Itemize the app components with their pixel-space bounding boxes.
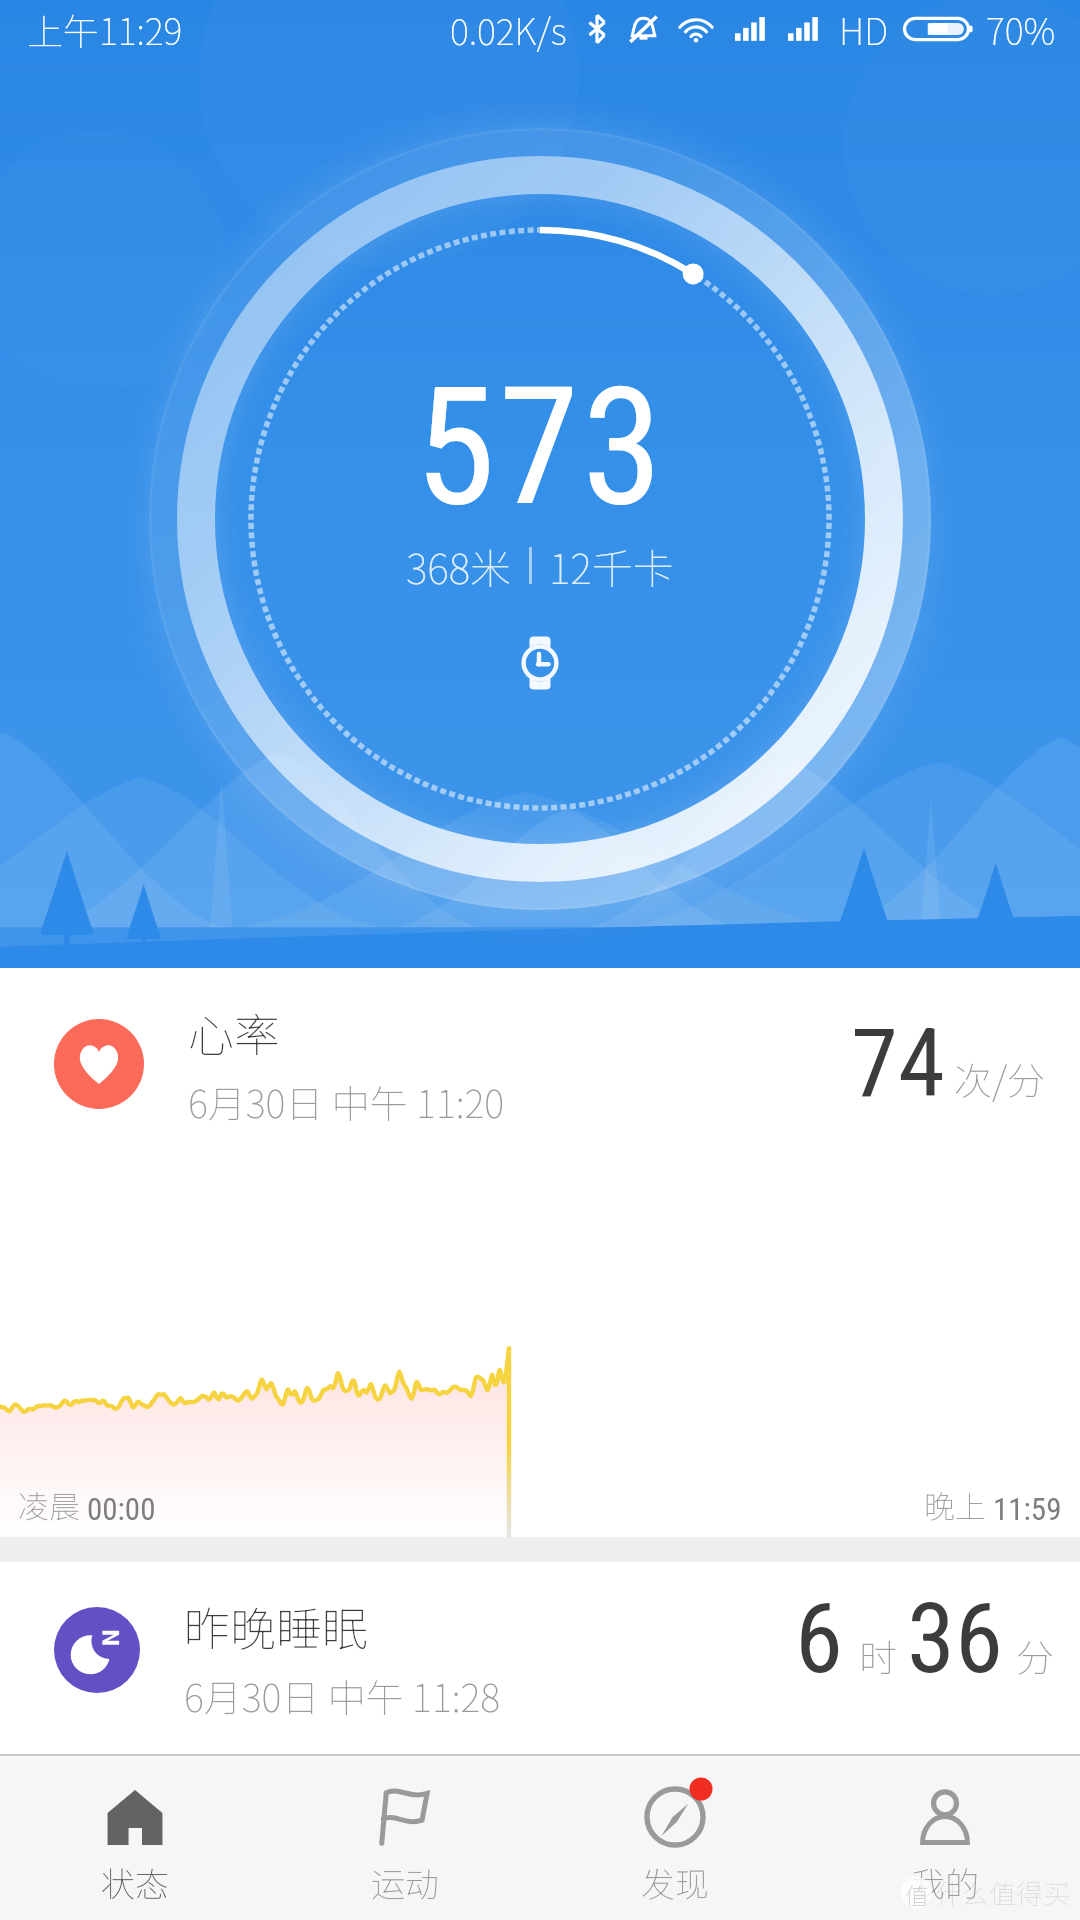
staticText: 运动 [371,1858,439,1907]
staticText: 时 [859,1628,898,1683]
staticText: 12千卡 [549,536,674,595]
staticText: 70% [986,3,1056,55]
button[interactable]: 发现 [540,1756,810,1920]
staticText: 6月30日 中午 11:20 [188,1074,505,1129]
staticText: 昨晚睡眠 [184,1593,368,1660]
button[interactable]: 状态 [0,1756,270,1920]
staticText: 36 [907,1582,1003,1696]
staticText: 次/分 [954,1051,1046,1106]
staticText: 11:59 [993,1491,1062,1527]
staticText: HD [839,3,888,55]
staticText: 6月30日 中午 11:28 [184,1668,501,1723]
button[interactable]: 昨晚睡眠 [0,1562,1080,1754]
staticText: 368米 [406,536,512,595]
staticText: 0.02K/s [450,3,567,55]
staticText: 晚上 [924,1482,986,1527]
button[interactable]: 运动 [270,1756,540,1920]
staticText: 573 [415,352,666,543]
button[interactable]: 我的 [810,1756,1080,1920]
staticText: 什么值得买 [935,1873,1070,1912]
staticText: 值 [905,1877,929,1908]
staticText: 发现 [641,1858,709,1907]
staticText: 凌晨 [18,1482,80,1527]
button[interactable]: 心率 [0,968,1080,1159]
button[interactable]: 今日步数 573 [170,134,910,874]
staticText: 6 [795,1582,843,1696]
staticText: 分 [1016,1628,1055,1683]
staticText: 74 [851,1008,945,1119]
staticText: 心率 [188,999,280,1066]
staticText: 上午11:29 [27,3,183,55]
staticText: 我的 [911,1858,979,1907]
staticText: 00:00 [87,1491,156,1527]
staticText: 状态 [101,1858,169,1907]
